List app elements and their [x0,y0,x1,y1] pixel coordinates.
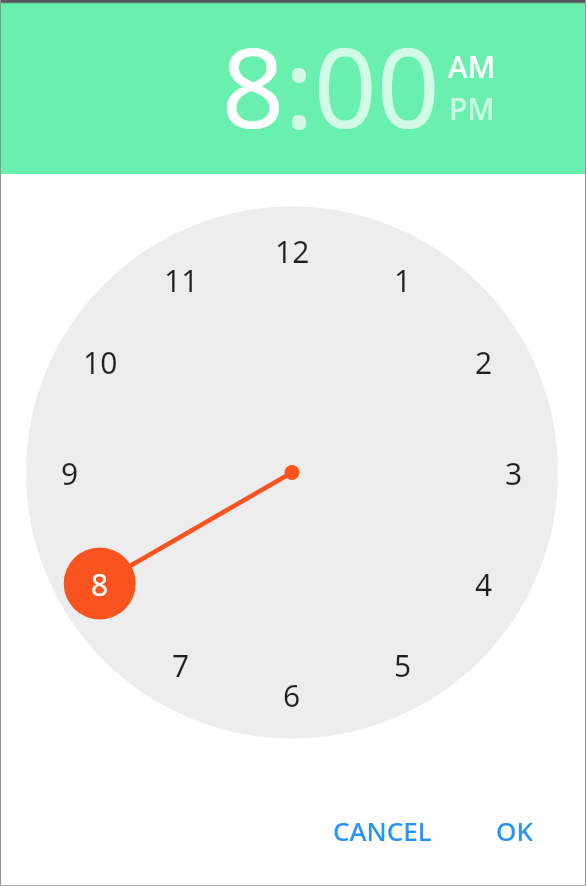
staticText: 2 [475,342,493,383]
staticText: CANCEL [333,813,432,848]
button[interactable]: 8 [64,548,136,620]
button[interactable]: 6 [260,674,324,716]
staticText: 8:00 [221,10,440,136]
staticText: 8 [91,564,109,605]
button[interactable]: 3 [482,452,546,494]
button[interactable]: 11 [149,259,213,301]
staticText: 1 [394,260,412,301]
button[interactable]: 9 [38,452,102,494]
staticText: 5 [394,645,412,686]
staticText: 4 [475,564,493,605]
button[interactable]: 8:00 [216,10,444,136]
button[interactable]: OK [474,805,554,855]
staticText: AM [448,46,496,86]
staticText: OK [496,813,533,848]
button[interactable]: 12 [260,230,324,272]
staticText: 11 [164,260,199,301]
staticText: 6 [283,675,301,716]
button[interactable]: AM [427,46,517,86]
button[interactable]: 7 [149,644,213,686]
staticText: 7 [172,645,190,686]
button[interactable]: CANCEL [317,805,447,855]
button[interactable]: 10 [68,341,132,383]
staticText: 10 [83,342,118,383]
staticText: 3 [505,453,523,494]
button[interactable]: 5 [371,644,435,686]
staticText: PM [449,88,495,128]
staticText: 9 [61,453,79,494]
button[interactable]: PM [427,88,517,128]
staticText: 12 [275,231,310,272]
button[interactable]: 2 [452,341,516,383]
button[interactable]: 1 [371,259,435,301]
button[interactable]: 4 [452,563,516,605]
